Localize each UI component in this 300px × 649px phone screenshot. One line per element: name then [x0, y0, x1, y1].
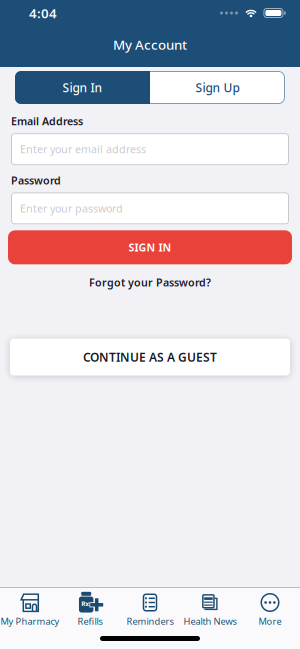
- button[interactable]: Email Address: [11, 133, 289, 165]
- staticText: Rx: [81, 599, 89, 608]
- button[interactable]: Forgot your Password?: [89, 264, 211, 289]
- staticText: Forgot your Password?: [89, 275, 211, 289]
- button[interactable]: Health News: [180, 592, 240, 627]
- staticText: Reminders: [126, 615, 173, 627]
- staticText: SIGN IN: [128, 240, 171, 254]
- button[interactable]: Password: [11, 192, 289, 224]
- button[interactable]: CONTINUE AS A GUEST: [10, 338, 290, 375]
- staticText: 4:04: [29, 4, 57, 22]
- staticText: Health News: [183, 615, 236, 627]
- staticText: Refills: [77, 615, 102, 627]
- staticText: Sign In: [62, 79, 102, 95]
- button[interactable]: My Pharmacy: [0, 592, 60, 627]
- staticText: Sign Up: [195, 79, 239, 95]
- staticText: My Account: [113, 36, 187, 53]
- staticText: CONTINUE AS A GUEST: [83, 349, 217, 365]
- staticText: My Pharmacy: [0, 615, 59, 627]
- staticText: Enter your email address: [20, 142, 146, 156]
- button[interactable]: SIGN IN: [8, 230, 292, 264]
- button[interactable]: Sign In: [15, 71, 150, 104]
- staticText: More: [258, 615, 281, 627]
- button[interactable]: Rx: [60, 592, 120, 627]
- staticText: Enter your password: [20, 201, 123, 215]
- button[interactable]: More: [240, 592, 300, 627]
- button[interactable]: Sign Up: [150, 71, 285, 104]
- staticText: Password: [11, 173, 61, 187]
- staticText: Email Address: [11, 114, 83, 128]
- button[interactable]: Reminders: [120, 592, 180, 627]
